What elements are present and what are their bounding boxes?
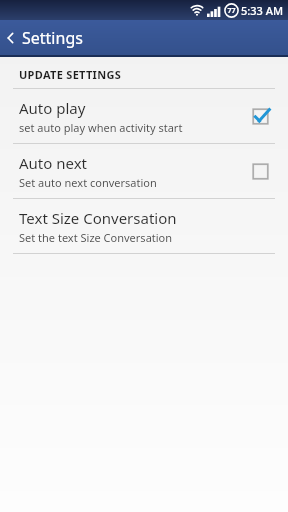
staticText: Auto next: [19, 153, 88, 173]
staticText: set auto play when activity start: [19, 120, 183, 135]
staticText: Set auto next conversation: [19, 175, 157, 190]
button[interactable]: Back: [0, 23, 93, 53]
staticText: Set the text Size Conversation: [19, 230, 173, 245]
button[interactable]: Unchecked: [250, 161, 270, 181]
staticText: Text Size Conversation: [19, 208, 177, 228]
staticText: Auto play: [19, 98, 86, 118]
other: Back: [4, 31, 18, 45]
staticText: 5:33 AM: [241, 3, 284, 18]
button[interactable]: Checked: [250, 106, 270, 126]
staticText: UPDATE SETTINGS: [19, 67, 122, 82]
button[interactable]: Auto next: [0, 144, 288, 198]
staticText: 77: [227, 6, 236, 16]
button[interactable]: Text Size Conversation: [0, 199, 288, 253]
staticText: Settings: [22, 27, 83, 49]
button[interactable]: Auto play: [0, 89, 288, 143]
